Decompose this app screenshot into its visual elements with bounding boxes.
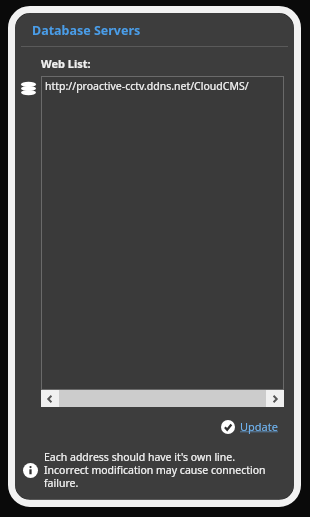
other: Information <box>23 463 38 478</box>
button[interactable]: Scroll left <box>41 390 59 407</box>
staticText: Web List: <box>41 56 91 71</box>
staticText: Database Servers <box>32 22 141 39</box>
staticText: Update <box>240 419 278 434</box>
button[interactable]: http://proactive-cctv.ddns.net/CloudCMS/ <box>41 76 284 390</box>
button[interactable]: Scroll right <box>266 390 284 407</box>
other: Database <box>20 80 37 97</box>
button[interactable]: Update <box>219 417 280 436</box>
staticText: Each address should have it's own line. … <box>44 450 280 490</box>
staticText: http://proactive-cctv.ddns.net/CloudCMS/ <box>45 79 249 93</box>
